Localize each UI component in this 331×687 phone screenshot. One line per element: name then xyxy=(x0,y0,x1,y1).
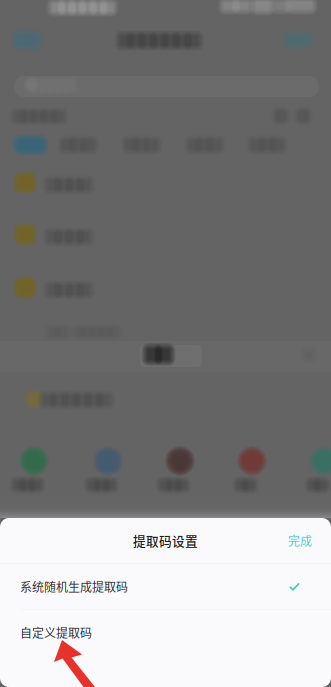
staticText: 完成 xyxy=(288,532,312,549)
button[interactable]: 系统随机生成提取码 xyxy=(0,564,331,609)
staticText: 提取码设置 xyxy=(133,531,198,550)
staticText: 自定义提取码 xyxy=(20,624,92,641)
button[interactable]: 自定义提取码 xyxy=(0,610,331,655)
button[interactable]: 完成 xyxy=(269,520,331,561)
staticText: 系统随机生成提取码 xyxy=(20,578,128,595)
